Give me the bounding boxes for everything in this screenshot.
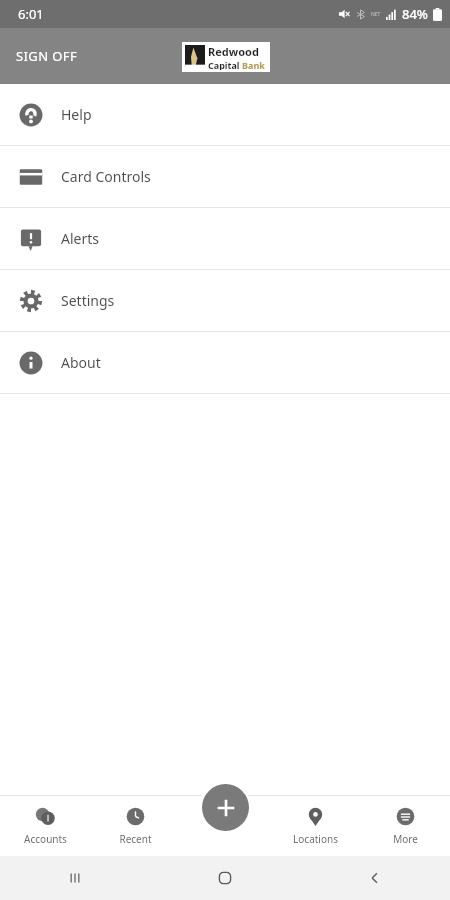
button[interactable]: Card Controls [0,146,450,207]
staticText: SIGN OFF [16,47,78,65]
staticText: 6:01 [18,5,44,23]
staticText: Bank [242,59,265,70]
staticText: More [393,832,418,846]
button[interactable]: Recent apps [0,856,150,900]
button[interactable]: Back [300,856,450,900]
staticText: Help [61,105,92,124]
staticText: Card Controls [61,167,151,186]
button[interactable]: Locations [270,798,360,854]
staticText: Recent [119,832,152,846]
button[interactable]: SIGN OFF [0,37,94,75]
button[interactable]: Settings [0,270,450,331]
staticText: Redwood [208,44,259,59]
button[interactable]: About [0,332,450,393]
button[interactable]: Home [150,856,300,900]
button[interactable]: Redwood Capital Bank logo [182,42,270,72]
button[interactable]: Help [0,84,450,145]
staticText: Capital [208,59,240,70]
button[interactable]: Recent [90,798,180,854]
staticText: About [61,353,101,372]
button[interactable]: Add [202,784,249,831]
staticText: Alerts [61,229,99,248]
staticText: Locations [293,832,338,846]
button[interactable]: Accounts [0,798,90,854]
staticText: 84% [402,5,428,23]
button[interactable]: More [360,798,450,854]
staticText: Accounts [24,832,67,846]
button[interactable]: Alerts [0,208,450,269]
staticText: NET [371,11,381,18]
staticText: Settings [61,291,115,310]
